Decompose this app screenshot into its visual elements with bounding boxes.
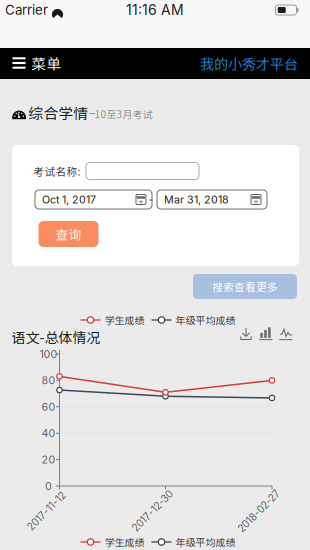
staticText: 20 [41, 453, 55, 466]
staticText: 语文-总体情况 [11, 327, 100, 347]
button[interactable]: Download [239, 327, 253, 341]
staticText: 0 [45, 479, 52, 492]
button[interactable]: 查询 [38, 221, 98, 247]
staticText: 考试名称: [33, 163, 80, 179]
staticText: 我的小秀才平台 [200, 53, 298, 74]
button[interactable]: 搜索查看更多 [193, 274, 297, 299]
staticText: 学生成绩 [104, 535, 144, 549]
staticText: 搜索查看更多 [212, 279, 278, 294]
staticText: 查询 [55, 225, 81, 243]
button[interactable]: 我的小秀才平台 [192, 48, 306, 79]
staticText: - [148, 193, 153, 206]
staticText: 2018-02-27 [231, 505, 286, 517]
staticText: 11:16 AM [126, 1, 184, 18]
staticText: Mar 31, 2018 [164, 193, 229, 206]
button[interactable]: Bar chart [259, 327, 273, 341]
button[interactable]: 菜单 [0, 47, 75, 78]
staticText: 菜单 [31, 52, 61, 74]
staticText: 80 [41, 374, 55, 387]
staticText: 综合学情 [28, 102, 88, 123]
button[interactable]: Oct 1, 2017 [35, 190, 152, 209]
button[interactable]: Mar 31, 2018 [157, 190, 267, 209]
staticText: 年级平均成绩 [175, 535, 235, 549]
staticText: 2017-11-12 [21, 505, 71, 517]
staticText: 年级平均成绩 [175, 313, 235, 327]
staticText: Oct 1, 2017 [42, 193, 96, 206]
staticText: 2017-12-30 [126, 505, 179, 517]
staticText: – [89, 106, 95, 120]
staticText: 60 [41, 400, 55, 413]
staticText: 10至3月考试 [94, 107, 152, 121]
staticText: 40 [41, 427, 55, 440]
staticText: 100 [39, 347, 57, 360]
staticText: Carrier [5, 2, 48, 18]
staticText: 学生成绩 [104, 313, 144, 327]
button[interactable]: Line chart [279, 327, 293, 341]
